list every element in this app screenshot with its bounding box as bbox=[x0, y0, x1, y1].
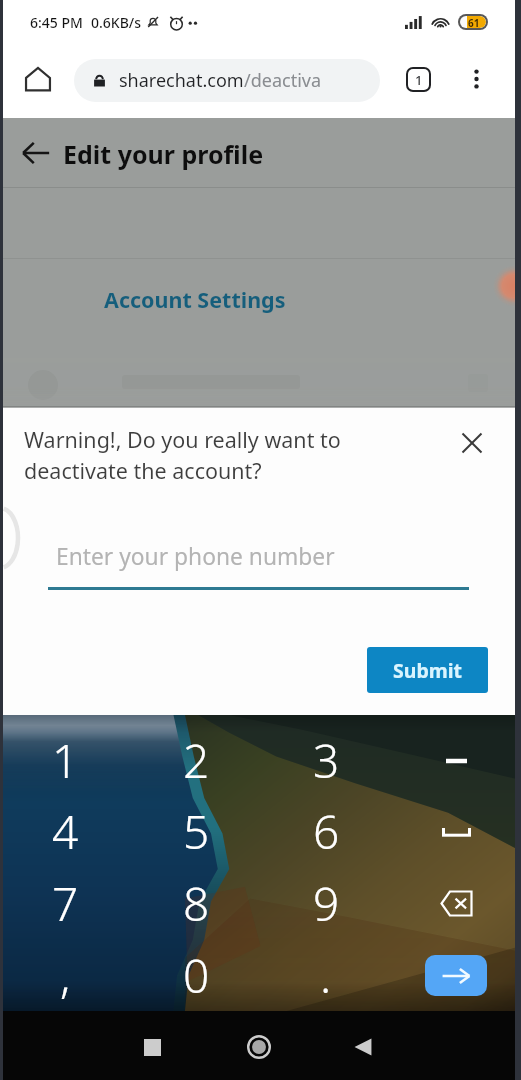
button[interactable]: . bbox=[261, 939, 391, 1011]
button[interactable] bbox=[391, 725, 521, 796]
button[interactable]: Submit bbox=[367, 647, 488, 693]
staticText: /deactiva bbox=[244, 68, 322, 93]
button[interactable]: Back bbox=[14, 131, 58, 175]
staticText: 1 bbox=[415, 71, 423, 89]
staticText: Submit bbox=[393, 657, 463, 684]
button[interactable]: 2 bbox=[131, 725, 261, 796]
staticText: 3 bbox=[313, 729, 340, 792]
button[interactable]: , bbox=[0, 939, 131, 1011]
staticText: 61 bbox=[468, 16, 480, 28]
staticText: 0 bbox=[183, 944, 210, 1007]
other: Enter bbox=[425, 955, 487, 996]
staticText: Edit your profile bbox=[63, 137, 264, 171]
button[interactable]: 6 bbox=[261, 796, 391, 867]
button[interactable]: Back bbox=[337, 1021, 389, 1073]
staticText: 5 bbox=[183, 800, 210, 863]
staticText: . bbox=[320, 944, 332, 1007]
button[interactable]: Tabs bbox=[396, 57, 441, 102]
button[interactable] bbox=[391, 796, 521, 867]
button[interactable]: Close bbox=[452, 423, 492, 463]
button[interactable]: Backspace bbox=[391, 867, 521, 939]
staticText: 4 bbox=[52, 800, 79, 863]
staticText: Warning!, Do you really want to deactiva… bbox=[24, 425, 341, 486]
button[interactable]: sharechat.com bbox=[74, 59, 380, 102]
button[interactable]: 8 bbox=[131, 867, 261, 939]
staticText: 9 bbox=[313, 872, 340, 935]
staticText: , bbox=[60, 944, 71, 1007]
button[interactable]: Home bbox=[233, 1021, 285, 1073]
button[interactable]: 4 bbox=[0, 796, 131, 867]
button[interactable]: Home bbox=[14, 55, 62, 103]
button[interactable]: 0 bbox=[131, 939, 261, 1011]
button[interactable]: Recents bbox=[126, 1021, 178, 1073]
button[interactable]: Enter bbox=[391, 939, 521, 1011]
staticText: 1 bbox=[52, 729, 79, 792]
staticText: Enter your phone number bbox=[56, 541, 335, 572]
button[interactable]: More options bbox=[455, 58, 497, 100]
staticText: 0.6KB/s bbox=[91, 13, 142, 32]
staticText: 2 bbox=[183, 729, 210, 792]
button[interactable]: 5 bbox=[131, 796, 261, 867]
staticText: 7 bbox=[52, 872, 79, 935]
button[interactable]: 9 bbox=[261, 867, 391, 939]
button[interactable]: 1 bbox=[0, 725, 131, 796]
button[interactable]: 3 bbox=[261, 725, 391, 796]
staticText: 6:45 PM bbox=[30, 13, 83, 32]
button[interactable]: 7 bbox=[0, 867, 131, 939]
staticText: Account Settings bbox=[104, 285, 286, 314]
staticText: 6 bbox=[313, 800, 340, 863]
staticText: sharechat.com bbox=[119, 68, 244, 93]
other: Backspace bbox=[436, 886, 476, 920]
staticText: 8 bbox=[183, 872, 210, 935]
